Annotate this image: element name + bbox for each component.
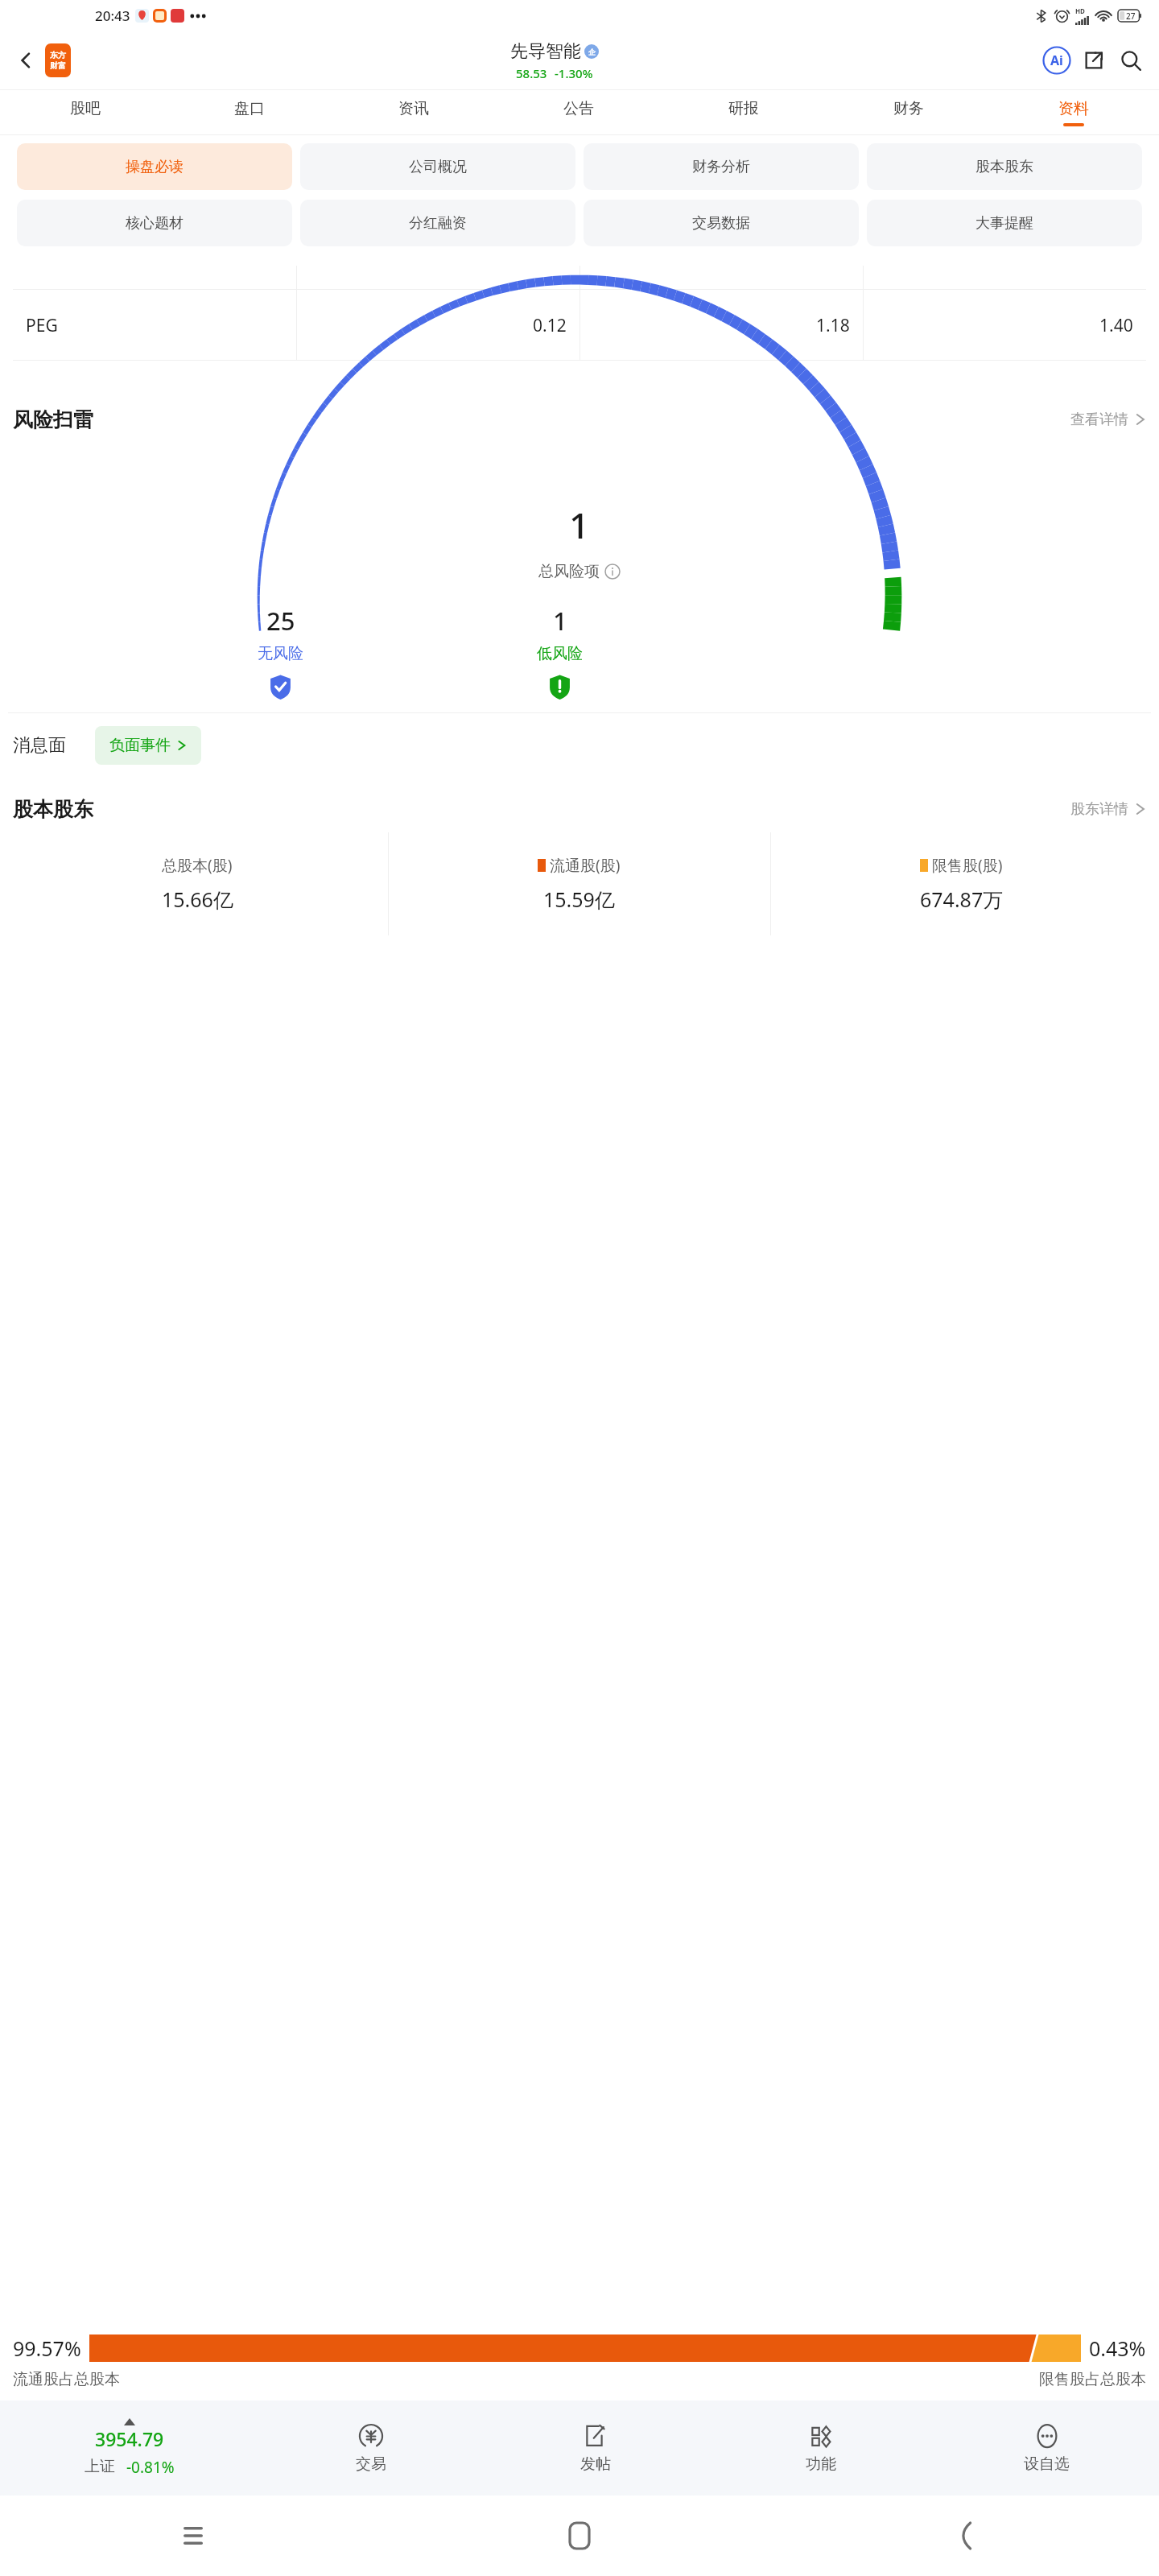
button[interactable]: 说明 <box>604 563 621 580</box>
button[interactable]: 交易 <box>258 2401 483 2495</box>
button[interactable]: 公司概况 <box>300 143 575 190</box>
staticText: 流通股占总股本 <box>13 2370 120 2389</box>
staticText: 1 <box>553 604 567 638</box>
staticText: 3954.79 <box>95 2426 164 2451</box>
staticText: 分红融资 <box>409 214 467 233</box>
staticText: 上证 <box>85 2457 115 2476</box>
staticText: 财富 <box>50 60 66 71</box>
button[interactable]: 资料 <box>991 90 1156 135</box>
staticText: 25 <box>266 604 295 638</box>
staticText: -0.81% <box>126 2457 175 2478</box>
button[interactable]: 1 <box>537 604 583 700</box>
staticText: 限售股(股) <box>932 855 1003 876</box>
staticText: 99.57% <box>13 2334 81 2362</box>
staticText: 低风险 <box>537 644 583 663</box>
staticText: 0.12 <box>533 314 567 337</box>
button[interactable]: 操盘必读 <box>17 143 292 190</box>
button[interactable]: 功能 <box>708 2401 934 2495</box>
staticText: 先导智能 <box>510 40 581 63</box>
staticText: PEG <box>26 314 58 337</box>
staticText: 15.59亿 <box>543 885 615 913</box>
staticText: 设自选 <box>1024 2454 1070 2474</box>
staticText: 58.53 <box>516 65 547 81</box>
button[interactable]: 东方财富 <box>45 43 71 77</box>
staticText: 财务分析 <box>692 158 750 176</box>
staticText: 研报 <box>728 99 759 118</box>
button[interactable]: 财务分析 <box>584 143 859 190</box>
staticText: 股吧 <box>70 99 101 118</box>
button[interactable]: 公告 <box>496 90 661 135</box>
button[interactable]: 股本股东 <box>13 786 1146 832</box>
button[interactable]: 股本股东 <box>867 143 1142 190</box>
staticText: 无风险 <box>258 644 303 663</box>
staticText: 东方 <box>50 50 66 60</box>
button[interactable]: 交易数据 <box>584 200 859 246</box>
staticText: 交易 <box>356 2454 386 2474</box>
button[interactable]: 研报 <box>661 90 826 135</box>
staticText: 盘口 <box>234 99 265 118</box>
staticText: 消息面 <box>13 734 66 757</box>
button[interactable]: 25 <box>258 604 303 700</box>
button[interactable]: 3954.79 <box>0 2401 258 2495</box>
staticText: 股东详情 <box>1070 800 1128 819</box>
button[interactable]: 财务 <box>826 90 991 135</box>
staticText: 查看详情 <box>1070 411 1128 429</box>
button[interactable]: 分享 <box>1075 42 1112 79</box>
staticText: 大事提醒 <box>975 214 1033 233</box>
button[interactable]: 设自选 <box>934 2401 1159 2495</box>
staticText: 企 <box>588 47 596 56</box>
button[interactable]: 负面事件 <box>95 726 201 765</box>
button[interactable]: 盘口 <box>167 90 332 135</box>
staticText: 股本股东 <box>975 158 1033 176</box>
button[interactable]: 核心题材 <box>17 200 292 246</box>
staticText: 15.66亿 <box>162 885 233 913</box>
staticText: 资讯 <box>398 99 429 118</box>
staticText: 限售股占总股本 <box>1039 2370 1146 2389</box>
staticText: 资料 <box>1058 99 1089 118</box>
staticText: 核心题材 <box>126 214 184 233</box>
button[interactable]: 大事提醒 <box>867 200 1142 246</box>
staticText: 20:43 <box>95 6 130 25</box>
button[interactable]: 风险扫雷 <box>13 396 1146 443</box>
button[interactable]: AI助手 <box>1038 42 1075 79</box>
staticText: 1.18 <box>816 314 850 337</box>
staticText: 1 <box>569 501 590 549</box>
staticText: 总股本(股) <box>162 855 233 876</box>
staticText: 1.40 <box>1099 314 1133 337</box>
button[interactable]: 发帖 <box>483 2401 708 2495</box>
staticText: 交易数据 <box>692 214 750 233</box>
button[interactable]: 返回 <box>10 44 42 76</box>
staticText: 风险扫雷 <box>13 407 93 432</box>
staticText: Ai <box>1050 52 1063 69</box>
staticText: 财务 <box>893 99 924 118</box>
staticText: 公司概况 <box>409 158 467 176</box>
button[interactable]: 资讯 <box>332 90 496 135</box>
staticText: 发帖 <box>580 2454 611 2474</box>
staticText: HD <box>1075 6 1085 15</box>
staticText: 功能 <box>806 2454 836 2474</box>
staticText: 674.87万 <box>920 885 1004 913</box>
button[interactable]: 搜索 <box>1112 42 1149 79</box>
staticText: 操盘必读 <box>126 158 184 176</box>
staticText: 总风险项 <box>538 562 600 581</box>
staticText: 27 <box>1126 10 1136 22</box>
button[interactable]: 分红融资 <box>300 200 575 246</box>
staticText: 负面事件 <box>109 736 171 755</box>
staticText: -1.30% <box>555 65 593 81</box>
staticText: 股本股东 <box>13 797 93 822</box>
staticText: 0.43% <box>1089 2334 1146 2362</box>
staticText: 公告 <box>563 99 594 118</box>
staticText: 流通股(股) <box>550 855 621 876</box>
button[interactable]: 股吧 <box>3 90 167 135</box>
